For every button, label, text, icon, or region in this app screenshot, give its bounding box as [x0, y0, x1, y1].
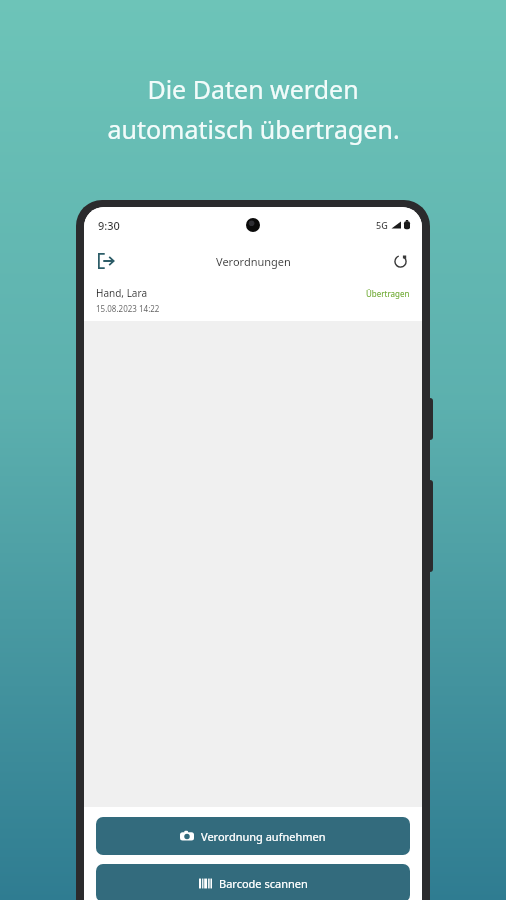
staticText: Hand, Lara [96, 286, 148, 300]
staticText: Übertragen [366, 288, 410, 299]
button[interactable]: Hand, Lara [84, 279, 422, 321]
button[interactable]: Barcode scannen [96, 864, 410, 900]
button[interactable]: Abmelden [90, 245, 122, 277]
staticText: automatisch übertragen. [107, 112, 400, 146]
staticText: Barcode scannen [219, 876, 308, 891]
staticText: Verordnungen [216, 254, 291, 269]
staticText: 9:30 [98, 218, 120, 233]
staticText: 5G [376, 219, 388, 231]
staticText: Die Daten werden [147, 72, 359, 106]
staticText: 15.08.2023 14:22 [96, 303, 160, 314]
button[interactable]: Aktualisieren [384, 245, 416, 277]
button[interactable]: Verordnung aufnehmen [96, 817, 410, 855]
staticText: Verordnung aufnehmen [201, 829, 326, 844]
